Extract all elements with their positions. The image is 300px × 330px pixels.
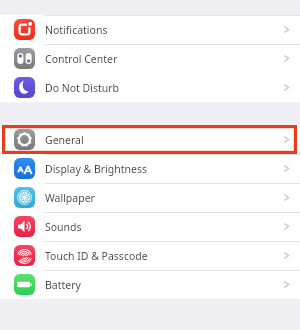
staticText: Touch ID & Passcode [45, 249, 148, 263]
staticText: Display & Brightness [45, 162, 148, 176]
button[interactable]: Notifications [0, 15, 300, 44]
staticText: Battery [45, 278, 81, 292]
staticText: Notifications [45, 23, 108, 37]
button[interactable]: Touch ID & Passcode [0, 241, 300, 270]
staticText: Wallpaper [45, 191, 95, 205]
button[interactable]: Sounds [0, 212, 300, 241]
button[interactable]: Battery [0, 270, 300, 299]
staticText: Control Center [45, 52, 118, 66]
button[interactable]: General [0, 125, 300, 154]
staticText: General [45, 133, 84, 147]
button[interactable]: Wallpaper [0, 183, 300, 212]
button[interactable]: Display & Brightness [0, 154, 300, 183]
button[interactable]: Control Center [0, 44, 300, 73]
staticText: Sounds [45, 220, 82, 234]
button[interactable]: Do Not Disturb [0, 73, 300, 102]
staticText: Do Not Disturb [45, 81, 120, 95]
